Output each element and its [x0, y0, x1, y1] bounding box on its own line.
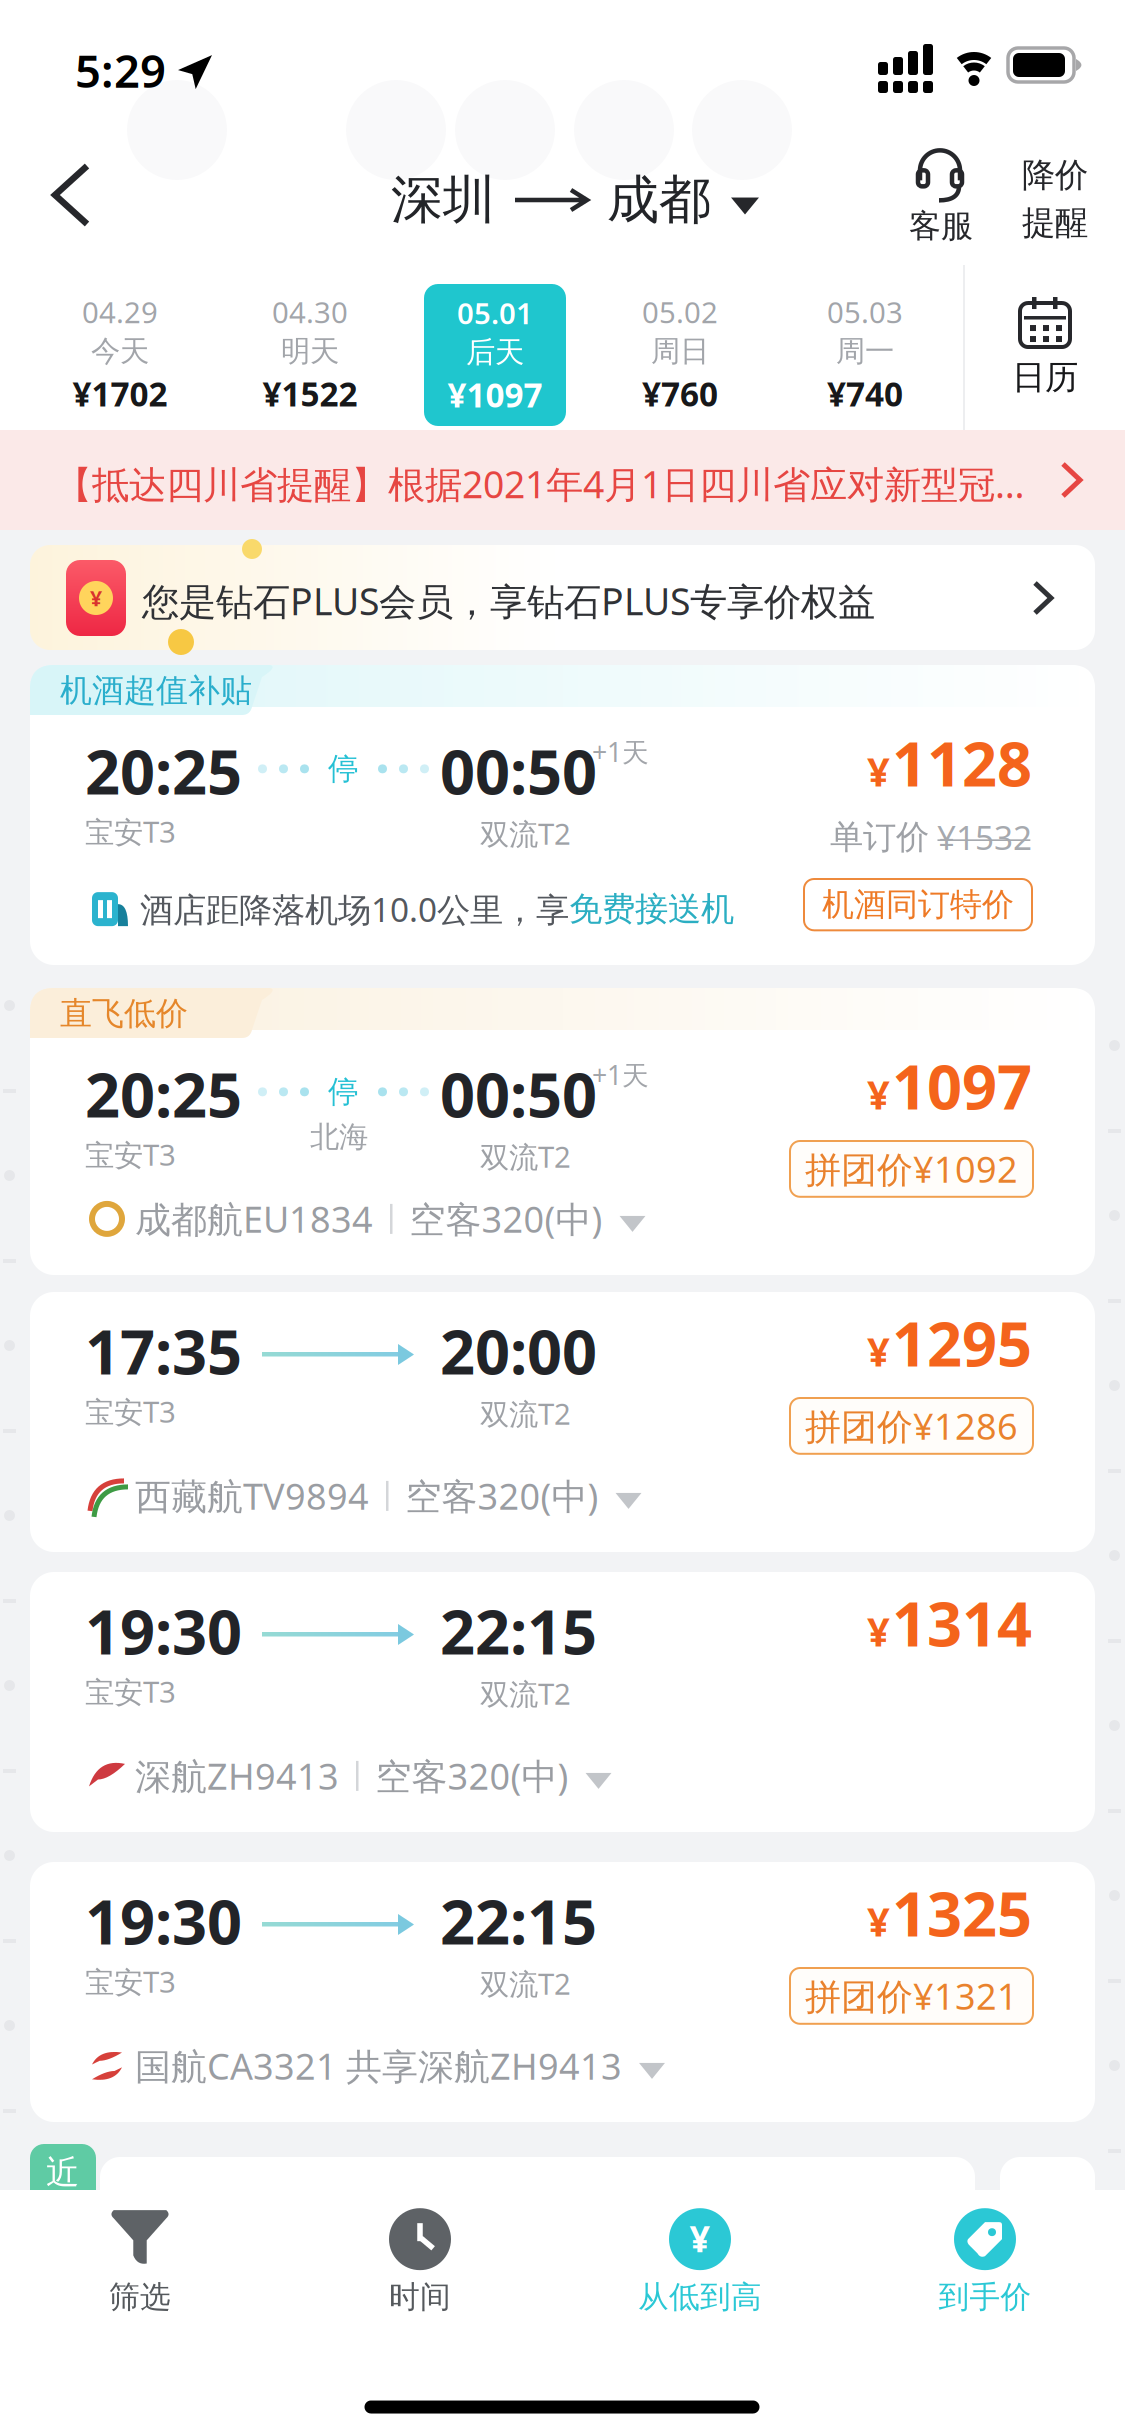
button[interactable]: 17:35	[30, 1292, 1095, 1552]
button[interactable]: 附近机场低价	[30, 2144, 975, 2217]
button[interactable]: 直飞低价	[30, 988, 1095, 1275]
staticText: 日历	[1012, 357, 1078, 398]
staticText: ¥	[867, 744, 890, 797]
button[interactable]: 到手价	[938, 2208, 1031, 2316]
staticText: 1128	[892, 722, 1032, 803]
staticText: 直飞低价	[60, 994, 188, 1033]
staticText: 周日	[651, 333, 709, 369]
staticText: 成都航EU1834	[135, 1195, 373, 1243]
staticText: 【抵达四川省提醒】根据2021年4月1日四川省应对新型冠…	[55, 459, 1025, 509]
staticText: 周一	[836, 333, 894, 369]
staticText: 双流T2	[480, 1964, 571, 2003]
staticText: ¥	[867, 1067, 890, 1120]
staticText: ¥1522	[262, 371, 357, 416]
staticText: 停	[328, 750, 359, 788]
staticText: 后天	[466, 334, 524, 370]
staticText: 双流T2	[480, 1137, 571, 1176]
staticText: 空客320(中)	[375, 1752, 568, 1800]
staticText: +1天	[592, 734, 649, 769]
button[interactable]: 05.01	[424, 284, 566, 426]
staticText: 1097	[892, 1045, 1032, 1126]
staticText: 机酒同订特价	[822, 885, 1014, 924]
staticText: +1天	[592, 1057, 649, 1092]
staticText: 北海	[310, 1119, 368, 1155]
staticText: 明天	[281, 333, 339, 369]
staticText: ¥1702	[72, 371, 167, 416]
staticText: 05.03	[827, 292, 903, 331]
staticText: 时间	[389, 2278, 451, 2316]
button[interactable]: 19:30	[30, 1862, 1095, 2122]
staticText: ¥	[867, 1324, 890, 1377]
staticText: 双流T2	[480, 1674, 571, 1713]
staticText: 1325	[892, 1872, 1032, 1953]
staticText: 从低到高	[638, 2278, 762, 2316]
staticText: 空客320(中)	[405, 1472, 598, 1520]
staticText: 05.01	[457, 293, 533, 332]
staticText: 深圳	[391, 168, 495, 232]
staticText: 19:30	[85, 1590, 242, 1671]
staticText: 19:30	[85, 1880, 242, 1961]
staticText: 04.29	[82, 292, 158, 331]
staticText: 22:15	[440, 1590, 597, 1671]
staticText: 酒店距降落机场10.0公里，享	[140, 887, 569, 931]
staticText: 04.30	[272, 292, 348, 331]
button[interactable]: 19:30	[30, 1572, 1095, 1832]
staticText: 00:50	[440, 730, 597, 811]
button[interactable]: 【抵达四川省提醒】根据2021年4月1日四川省应对新型冠…	[0, 430, 1125, 530]
button[interactable]: 时间	[389, 2208, 451, 2316]
button[interactable]: 降价	[1022, 155, 1088, 243]
staticText: 20:25	[85, 730, 242, 811]
staticText: 单订价	[830, 817, 929, 858]
button[interactable]: ¥	[30, 545, 1095, 650]
staticText: 05.02	[642, 292, 718, 331]
button[interactable]: 04.30	[262, 292, 357, 416]
staticText: 空客320(中)	[409, 1195, 602, 1243]
staticText: 近	[46, 2152, 79, 2193]
staticText: 拼团价¥1286	[805, 1402, 1018, 1450]
button[interactable]: 日历	[965, 265, 1125, 430]
staticText: 宝安T3	[85, 1672, 176, 1711]
staticText: ¥	[90, 584, 102, 612]
staticText: 双流T2	[480, 814, 571, 853]
staticText: 免费接送机	[569, 889, 734, 930]
staticText: 国航CA3321 共享深航ZH9413	[135, 2042, 622, 2090]
staticText: ¥1097	[447, 372, 542, 417]
button[interactable]: 客服	[909, 146, 973, 246]
staticText: 客服	[909, 206, 973, 246]
staticText: 筛选	[109, 2278, 171, 2316]
button[interactable]: 深圳	[391, 168, 759, 232]
button[interactable]: 05.02	[642, 292, 718, 416]
staticText: 深航ZH9413	[135, 1752, 339, 1800]
button[interactable]: 机酒同订特价	[804, 879, 1032, 930]
staticText: 拼团价¥1092	[805, 1145, 1018, 1193]
staticText: 您是钻石PLUS会员，享钻石PLUS专享价权益	[142, 576, 875, 626]
staticText: ¥1532	[937, 815, 1032, 859]
staticText: 西藏航TV9894	[135, 1472, 369, 1520]
staticText: 成都	[607, 168, 711, 232]
staticText: 1295	[892, 1302, 1032, 1383]
staticText: ¥	[867, 1604, 890, 1657]
staticText: ¥740	[827, 371, 903, 416]
staticText: ¥	[867, 1894, 890, 1947]
button[interactable]: 05.03	[827, 292, 903, 416]
staticText: 双流T2	[480, 1394, 571, 1433]
staticText: 20:25	[85, 1053, 242, 1134]
staticText: 22:15	[440, 1880, 597, 1961]
staticText: ¥	[689, 2214, 710, 2262]
staticText: 00:50	[440, 1053, 597, 1134]
staticText: ¥760	[642, 371, 718, 416]
staticText: 提醒	[1022, 202, 1088, 243]
button[interactable]: 机酒超值补贴	[30, 665, 1095, 965]
staticText: 1314	[892, 1582, 1032, 1663]
button[interactable]: 04.29	[72, 292, 167, 416]
button[interactable]: 筛选	[109, 2208, 171, 2316]
staticText: 宝安T3	[85, 812, 176, 851]
button[interactable]: ¥	[638, 2208, 762, 2316]
staticText: 17:35	[85, 1310, 242, 1391]
staticText: 拼团价¥1321	[805, 1972, 1018, 2020]
staticText: 到手价	[938, 2278, 1031, 2316]
staticText: 降价	[1022, 155, 1088, 195]
button[interactable]: Back	[31, 156, 111, 234]
staticText: 停	[328, 1073, 359, 1111]
staticText: 今天	[91, 333, 149, 369]
